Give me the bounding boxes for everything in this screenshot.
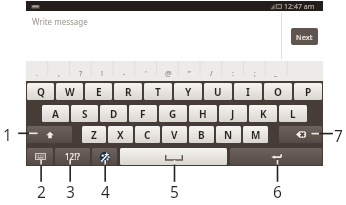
button[interactable]: Z bbox=[82, 126, 106, 143]
button[interactable]: : bbox=[222, 61, 244, 81]
staticText: 7 bbox=[334, 125, 343, 146]
staticText: A bbox=[52, 107, 59, 121]
button[interactable]: H bbox=[189, 105, 217, 122]
button[interactable]: ! bbox=[91, 61, 113, 81]
button[interactable]: U bbox=[204, 83, 232, 100]
button[interactable]: V bbox=[162, 126, 187, 143]
staticText: - bbox=[123, 68, 126, 78]
staticText: T bbox=[155, 85, 161, 99]
button[interactable]: Next bbox=[291, 28, 318, 45]
staticText: O bbox=[274, 85, 282, 99]
button[interactable]: P bbox=[294, 83, 322, 100]
staticText: S bbox=[82, 107, 88, 121]
button[interactable]: @ bbox=[157, 61, 179, 81]
staticText: ; bbox=[254, 68, 257, 78]
staticText: W bbox=[65, 85, 75, 99]
staticText: I bbox=[246, 85, 250, 99]
staticText: L bbox=[290, 107, 296, 121]
staticText: Y bbox=[185, 85, 192, 99]
staticText: V bbox=[171, 128, 178, 142]
staticText: @ bbox=[165, 68, 172, 78]
staticText: N bbox=[224, 128, 233, 142]
button[interactable]: D bbox=[100, 105, 127, 122]
button[interactable]: Shift bbox=[27, 126, 72, 143]
button[interactable]: Backspace bbox=[279, 126, 322, 143]
button[interactable]: M bbox=[243, 126, 268, 143]
staticText: P bbox=[305, 85, 312, 99]
button[interactable]: ' bbox=[135, 61, 157, 81]
staticText: 3 bbox=[66, 181, 75, 202]
staticText: H bbox=[199, 107, 207, 121]
button[interactable]: R bbox=[114, 83, 142, 100]
button[interactable]: F bbox=[129, 105, 157, 122]
staticText: Z bbox=[91, 128, 97, 142]
staticText: K bbox=[260, 107, 267, 121]
staticText: E bbox=[96, 85, 102, 99]
button[interactable]: X bbox=[108, 126, 133, 143]
staticText: D bbox=[110, 107, 118, 121]
button[interactable]: ” bbox=[178, 61, 200, 81]
button[interactable]: N bbox=[216, 126, 241, 143]
staticText: 6 bbox=[273, 181, 282, 202]
staticText: ” bbox=[188, 68, 191, 78]
staticText: / bbox=[210, 68, 213, 78]
button[interactable]: , bbox=[48, 61, 70, 81]
button[interactable]: O bbox=[264, 83, 292, 100]
button[interactable]: Q bbox=[27, 83, 54, 100]
staticText: 12:47 am bbox=[284, 2, 315, 12]
staticText: Q bbox=[37, 85, 45, 99]
button[interactable]: 12!? bbox=[55, 148, 90, 165]
button[interactable]: T bbox=[144, 83, 172, 100]
staticText: 1 bbox=[3, 124, 12, 145]
button[interactable]: G bbox=[159, 105, 187, 122]
button[interactable]: Smileys bbox=[92, 148, 117, 165]
button[interactable]: J bbox=[219, 105, 247, 122]
button[interactable]: B bbox=[189, 126, 214, 143]
staticText: U bbox=[214, 85, 222, 99]
staticText: ? bbox=[79, 68, 83, 78]
button[interactable]: Space bbox=[120, 148, 227, 165]
button[interactable]: Switch keyboard bbox=[27, 148, 53, 165]
button[interactable]: L bbox=[279, 105, 307, 122]
staticText: C bbox=[144, 128, 151, 142]
button[interactable]: Enter bbox=[230, 148, 322, 165]
staticText: M bbox=[251, 128, 261, 142]
staticText: ' bbox=[145, 68, 147, 78]
button[interactable]: W bbox=[56, 83, 83, 100]
staticText: _ bbox=[274, 68, 278, 78]
staticText: R bbox=[125, 85, 132, 99]
staticText: X bbox=[117, 128, 124, 142]
staticText: . bbox=[36, 68, 39, 78]
staticText: Next bbox=[296, 32, 313, 42]
button[interactable]: E bbox=[85, 83, 112, 100]
staticText: B bbox=[198, 128, 205, 142]
staticText: ! bbox=[101, 68, 104, 78]
staticText: 4 bbox=[101, 181, 110, 202]
button[interactable]: K bbox=[249, 105, 277, 122]
staticText: : bbox=[232, 68, 235, 78]
button[interactable]: ; bbox=[244, 61, 266, 81]
button[interactable]: C bbox=[135, 126, 160, 143]
staticText: , bbox=[58, 68, 61, 78]
button[interactable]: - bbox=[113, 61, 135, 81]
button[interactable]: S bbox=[71, 105, 98, 122]
button[interactable]: A bbox=[42, 105, 69, 122]
button[interactable]: _ bbox=[265, 61, 287, 81]
staticText: J bbox=[231, 107, 235, 121]
button[interactable]: . bbox=[26, 61, 48, 81]
staticText: 12!? bbox=[65, 151, 80, 162]
staticText: 2 bbox=[37, 181, 46, 202]
staticText: 5 bbox=[170, 181, 179, 202]
button[interactable]: ? bbox=[70, 61, 92, 81]
staticText: G bbox=[169, 107, 177, 121]
staticText: Write message bbox=[32, 16, 88, 27]
button[interactable]: Y bbox=[174, 83, 202, 100]
staticText: F bbox=[140, 107, 146, 121]
button[interactable]: I bbox=[234, 83, 262, 100]
button[interactable]: / bbox=[200, 61, 222, 81]
